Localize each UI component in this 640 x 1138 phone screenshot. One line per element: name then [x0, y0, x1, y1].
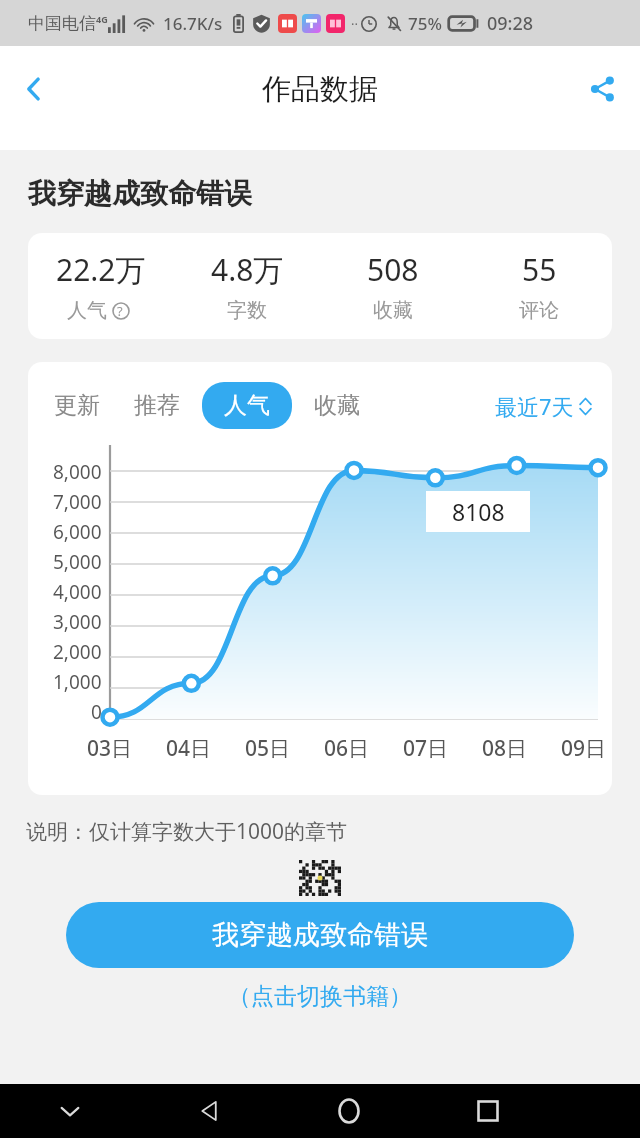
staticText: 中国电信	[28, 13, 96, 34]
staticText: ··	[351, 15, 358, 33]
staticText: 08日	[482, 734, 528, 763]
staticText: 22.2万	[56, 249, 146, 290]
staticText: 0	[91, 699, 102, 725]
staticText: 5,000	[53, 549, 102, 575]
button[interactable]: Home	[279, 1084, 418, 1138]
button[interactable]: 22.2万	[28, 249, 174, 323]
button[interactable]: Recents	[418, 1084, 557, 1138]
staticText: 2,000	[53, 639, 102, 665]
button[interactable]: （点击切换书籍）	[0, 982, 640, 1011]
button[interactable]: 人气	[202, 382, 292, 429]
staticText: 人气	[224, 391, 270, 420]
staticText: 04日	[166, 734, 212, 763]
button[interactable]: 4.8万	[174, 249, 320, 323]
staticText: 推荐	[134, 391, 180, 420]
button[interactable]: 508	[320, 249, 466, 323]
button[interactable]: 推荐	[130, 382, 184, 429]
staticText: 06日	[324, 734, 370, 763]
staticText: 更新	[54, 391, 100, 420]
staticText: 评论	[519, 298, 559, 323]
staticText: 4.8万	[211, 249, 284, 290]
staticText: 09:28	[487, 11, 534, 36]
staticText: 03日	[87, 734, 133, 763]
staticText: 8,000	[53, 459, 102, 485]
button[interactable]: Back	[6, 61, 62, 117]
staticText: 3,000	[53, 609, 102, 635]
staticText: 说明：仅计算字数大于1000的章节	[26, 817, 348, 846]
staticText: 1,000	[53, 669, 102, 695]
staticText: 55	[522, 249, 557, 290]
staticText: 07日	[403, 734, 449, 763]
button[interactable]: Hide	[0, 1084, 140, 1138]
button[interactable]: 收藏	[310, 382, 364, 429]
staticText: 字数	[227, 298, 267, 323]
button[interactable]: 更新	[50, 382, 104, 429]
button[interactable]: Share	[574, 61, 630, 117]
staticText: 508	[367, 249, 419, 290]
staticText: 人气	[67, 298, 107, 323]
staticText: 09日	[561, 734, 607, 763]
staticText: 16.7K/s	[163, 12, 223, 35]
staticText: 最近7天	[495, 391, 574, 421]
staticText: 05日	[245, 734, 291, 763]
button[interactable]: 55	[466, 249, 612, 323]
button[interactable]: Back	[140, 1084, 279, 1138]
button[interactable]: 最近7天	[495, 391, 592, 421]
staticText: 4G	[96, 13, 108, 25]
button[interactable]: 我穿越成致命错误	[66, 902, 574, 968]
staticText: 作品数据	[262, 71, 378, 108]
staticText: 6,000	[53, 519, 102, 545]
staticText: 4,000	[53, 579, 102, 605]
staticText: 收藏	[314, 391, 360, 420]
staticText: 我穿越成致命错误	[212, 918, 428, 952]
staticText: 我穿越成致命错误	[28, 176, 252, 211]
staticText: 75%	[408, 12, 442, 35]
staticText: 8108	[452, 496, 505, 527]
staticText: 7,000	[53, 489, 102, 515]
staticText: 收藏	[373, 298, 413, 323]
staticText: ?	[117, 302, 123, 320]
